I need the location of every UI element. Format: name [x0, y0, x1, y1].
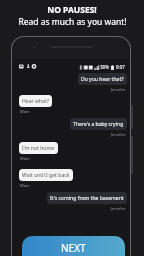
staticText: Mom — [20, 156, 30, 161]
button[interactable]: Do you hear that? — [78, 73, 127, 85]
staticText: There's a baby crying — [73, 121, 124, 128]
staticText: Hear what? — [22, 98, 49, 105]
staticText: Mom — [20, 109, 30, 114]
staticText: Wait until I get back — [22, 172, 70, 179]
staticText: 9:07 — [116, 64, 125, 70]
button[interactable]: Wait until I get back — [19, 169, 73, 181]
staticText: Jennifer — [111, 206, 126, 211]
staticText: Do you hear that? — [81, 76, 124, 83]
staticText: Read as much as you want! — [18, 16, 127, 28]
staticText: NEXT — [61, 241, 86, 255]
staticText: I'm not home — [22, 145, 55, 152]
staticText: Jennifer — [111, 132, 126, 137]
button[interactable]: Hear what? — [19, 95, 52, 107]
button[interactable]: There's a baby crying — [70, 118, 127, 130]
button[interactable]: I'm not home — [19, 142, 58, 154]
staticText: Mom — [20, 183, 30, 188]
staticText: It's coming from the basement — [50, 195, 124, 202]
staticText: Jennifer — [111, 87, 126, 92]
staticText: NO PAUSES! — [47, 4, 97, 16]
staticText: 38% — [100, 64, 109, 70]
button[interactable]: NEXT — [22, 236, 125, 256]
button[interactable]: It's coming from the basement — [47, 192, 127, 204]
